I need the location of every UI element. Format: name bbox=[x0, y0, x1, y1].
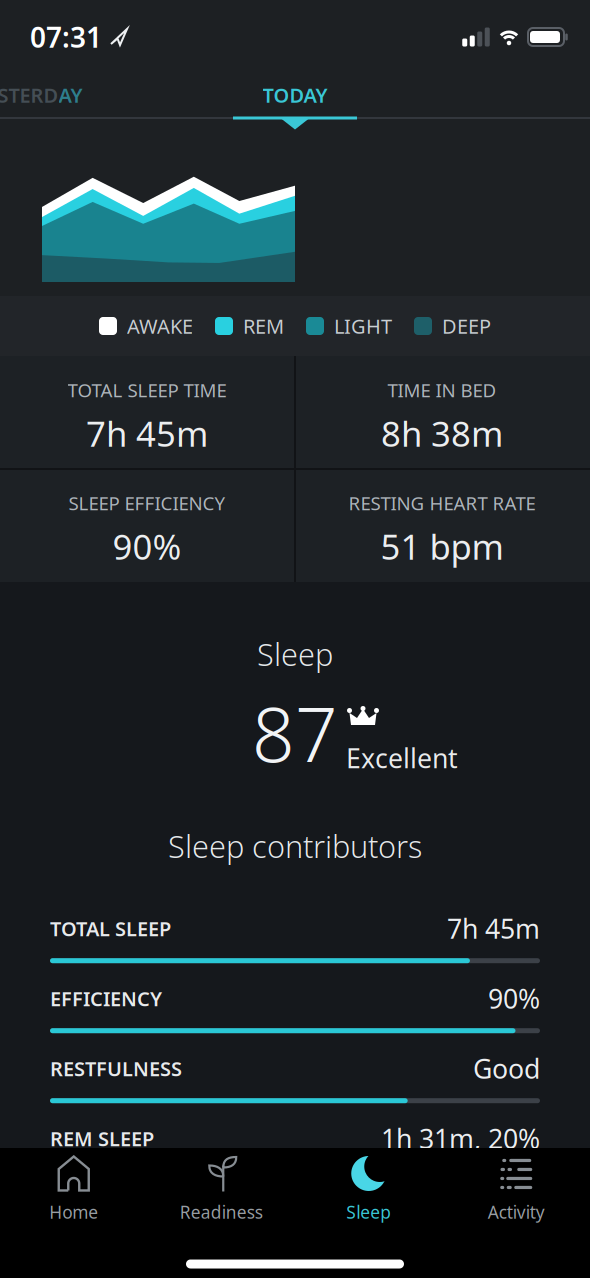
staticText: 1h 31m, 20% bbox=[381, 1121, 540, 1156]
staticText: TOTAL SLEEP TIME bbox=[67, 378, 226, 402]
staticText: 90% bbox=[112, 523, 181, 569]
staticText: DEEP bbox=[442, 313, 491, 339]
staticText: TODAY bbox=[262, 82, 327, 108]
staticText: 8h 38m bbox=[381, 410, 503, 456]
staticText: EFFICIENCY bbox=[50, 985, 162, 1012]
staticText: REM SLEEP bbox=[50, 1125, 154, 1152]
staticText: Good bbox=[473, 1051, 540, 1086]
button[interactable]: Home bbox=[14, 1154, 134, 1223]
button[interactable]: Sleep bbox=[309, 1154, 429, 1223]
staticText: Sleep bbox=[257, 634, 333, 674]
staticText: 90% bbox=[488, 981, 540, 1016]
button[interactable]: STERD bbox=[0, 69, 110, 121]
button[interactable]: Activity bbox=[456, 1154, 576, 1223]
staticText: Excellent bbox=[346, 740, 458, 776]
button[interactable]: Readiness bbox=[161, 1154, 281, 1223]
staticText: Sleep contributors bbox=[168, 826, 422, 866]
staticText: Activity bbox=[488, 1200, 545, 1223]
staticText: RESTING HEART RATE bbox=[348, 491, 535, 515]
staticText: 07:31 bbox=[30, 18, 102, 56]
staticText: AY bbox=[58, 82, 82, 108]
button[interactable]: TODAY bbox=[225, 69, 365, 121]
staticText: 51 bpm bbox=[380, 523, 503, 569]
staticText: STERD bbox=[0, 82, 58, 108]
staticText: RESTFULNESS bbox=[50, 1055, 182, 1082]
staticText: 7h 45m bbox=[447, 911, 540, 946]
staticText: AWAKE bbox=[127, 313, 193, 339]
staticText: 87 bbox=[252, 683, 338, 783]
staticText: TOTAL SLEEP bbox=[50, 915, 171, 942]
staticText: LIGHT bbox=[334, 313, 392, 339]
staticText: Sleep bbox=[346, 1200, 391, 1223]
staticText: 7h 45m bbox=[86, 410, 208, 456]
staticText: TIME IN BED bbox=[387, 378, 496, 402]
staticText: SLEEP EFFICIENCY bbox=[68, 491, 225, 515]
staticText: Home bbox=[49, 1200, 98, 1223]
staticText: Readiness bbox=[180, 1200, 263, 1223]
staticText: REM bbox=[243, 313, 284, 339]
